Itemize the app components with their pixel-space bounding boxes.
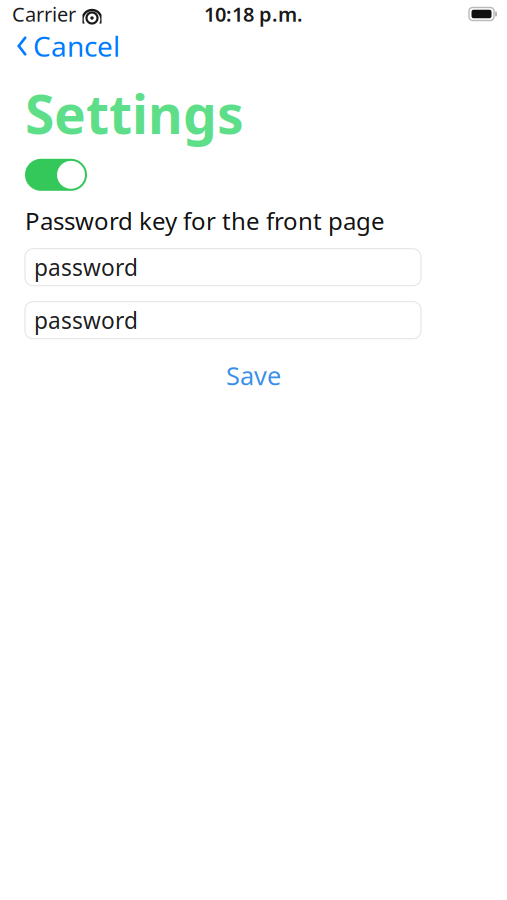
staticText: Password key for the front page [25,205,385,237]
staticText: Save [226,359,281,392]
button[interactable]: Cancel [0,28,130,64]
staticText: password [34,252,138,282]
button[interactable]: Enable password protection [25,159,87,191]
button[interactable]: Save [208,353,299,398]
staticText: Settings [25,78,244,149]
staticText: Carrier [12,1,76,27]
staticText: password [34,305,138,335]
staticText: Cancel [33,27,120,65]
staticText: 10:18 p.m. [204,1,303,27]
